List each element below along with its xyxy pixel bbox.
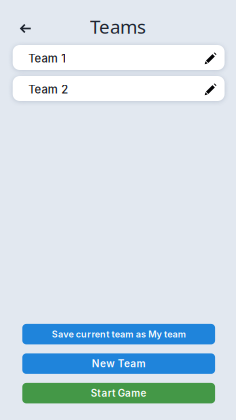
- button[interactable]: Start Game: [22, 383, 215, 403]
- button[interactable]: Team 2: [13, 76, 225, 101]
- staticText: Team 2: [28, 83, 68, 96]
- staticText: Start Game: [91, 387, 147, 399]
- staticText: Teams: [90, 14, 146, 39]
- staticText: New Team: [92, 358, 146, 370]
- button[interactable]: New Team: [22, 353, 215, 374]
- staticText: Team 1: [28, 52, 66, 65]
- button[interactable]: Back: [13, 16, 37, 40]
- button[interactable]: Save current team as My team: [22, 324, 215, 344]
- button[interactable]: Team 1: [13, 45, 225, 70]
- staticText: Save current team as My team: [52, 329, 186, 340]
